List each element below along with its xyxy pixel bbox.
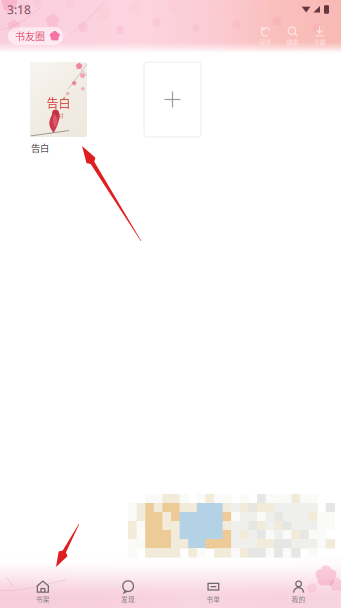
button[interactable]: 发现 [85, 579, 170, 605]
button[interactable]: 书友圈 [8, 27, 63, 45]
button[interactable]: 搜索 [279, 25, 306, 46]
button[interactable]: 添加书籍 [144, 62, 201, 137]
staticText: 江月 [53, 111, 63, 119]
staticText: 同步 [259, 37, 271, 46]
staticText: 书架 [36, 594, 50, 604]
staticText: 书友圈 [15, 29, 45, 43]
button[interactable]: 同步 [252, 25, 279, 46]
staticText: 搜索 [286, 37, 298, 46]
staticText: 3:18 [7, 1, 31, 17]
button[interactable]: 书单 [170, 579, 256, 605]
button[interactable]: 告白 [30, 62, 87, 154]
staticText: 告白 [31, 141, 49, 154]
staticText: 我的 [291, 594, 305, 604]
staticText: 发现 [121, 594, 135, 604]
staticText: 告白 [46, 94, 70, 111]
button[interactable]: 下载 [306, 25, 333, 46]
button[interactable]: 书架 [0, 579, 85, 605]
staticText: 下载 [313, 37, 325, 46]
button[interactable]: 我的 [256, 579, 341, 605]
staticText: 书单 [206, 594, 220, 604]
